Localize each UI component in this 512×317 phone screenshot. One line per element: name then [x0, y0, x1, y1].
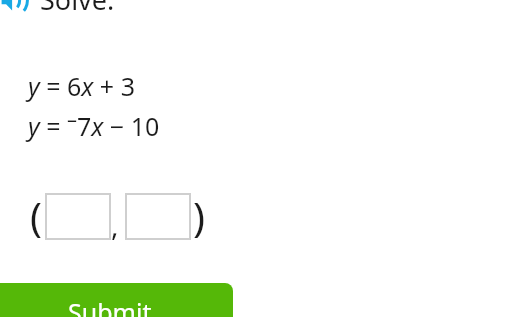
staticText: ,: [111, 206, 119, 244]
staticText: Submit: [68, 295, 152, 317]
button[interactable]: Submit: [0, 283, 233, 317]
staticText: Solve.: [40, 0, 115, 18]
staticText: y = 6x + 3: [28, 69, 135, 103]
staticText: ): [193, 189, 205, 243]
staticText: (: [30, 189, 42, 243]
button[interactable]: [45, 193, 111, 240]
button[interactable]: Read question aloud: [0, 0, 115, 18]
staticText: y = –7x − 10: [28, 106, 160, 144]
button[interactable]: [125, 193, 191, 240]
